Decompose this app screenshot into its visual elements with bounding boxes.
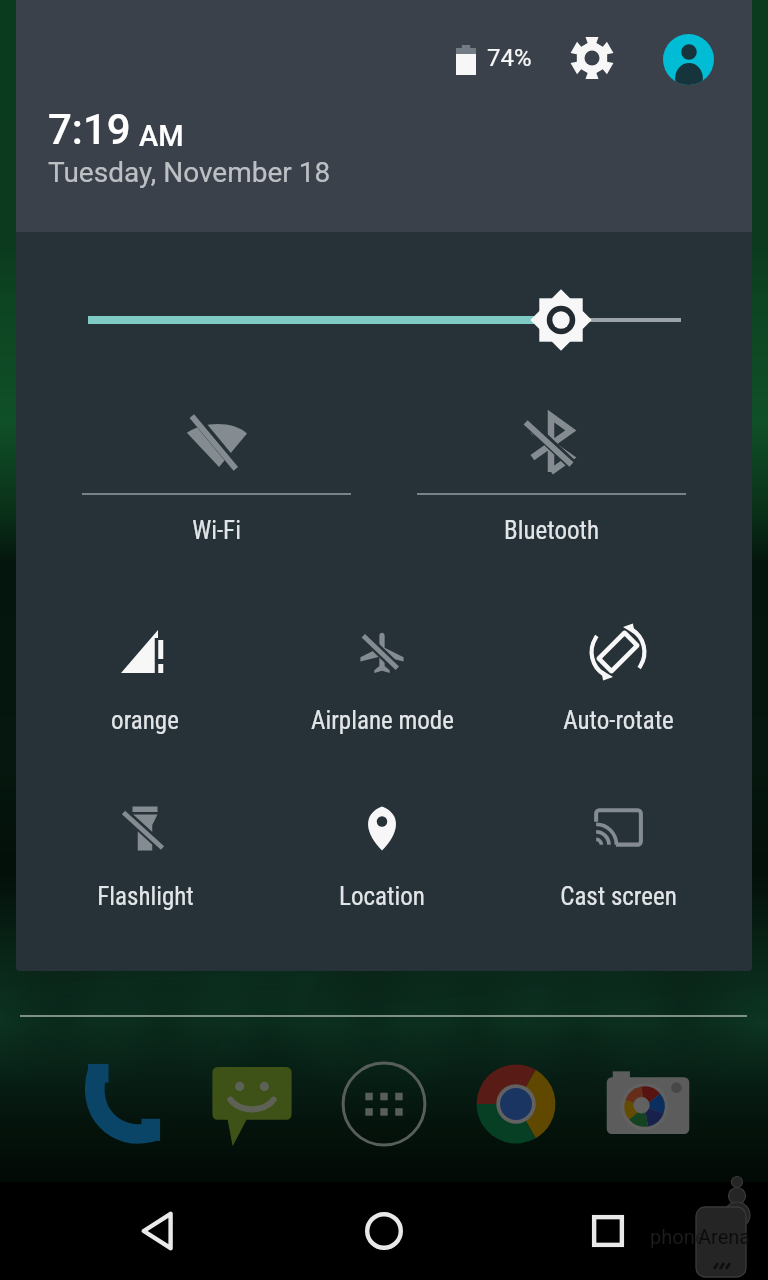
button[interactable]: Recent apps xyxy=(558,1182,658,1280)
button[interactable]: Airplane mode xyxy=(272,623,492,748)
button[interactable]: Wi-Fi xyxy=(66,400,366,560)
staticText: Tuesday, November 18 xyxy=(48,156,331,189)
staticText: AM xyxy=(139,119,184,153)
staticText: Wi-Fi xyxy=(192,516,241,545)
button[interactable]: Auto-rotate xyxy=(508,623,728,748)
button[interactable]: Flashlight xyxy=(35,799,255,924)
button[interactable]: Bluetooth xyxy=(401,400,701,560)
staticText: Location xyxy=(339,882,425,911)
button[interactable]: Home xyxy=(334,1182,434,1280)
button[interactable]: Settings xyxy=(564,30,620,86)
staticText: Bluetooth xyxy=(504,516,599,545)
button[interactable]: Cast screen xyxy=(508,799,728,924)
button[interactable]: Location xyxy=(272,799,492,924)
button[interactable]: Brightness xyxy=(70,290,700,350)
button[interactable]: User profile xyxy=(663,34,714,85)
button[interactable]: orange xyxy=(35,623,255,748)
button[interactable]: Phone xyxy=(68,1052,172,1156)
button[interactable]: All apps xyxy=(332,1052,436,1156)
button[interactable]: Camera xyxy=(596,1052,700,1156)
staticText: Arena xyxy=(698,1225,751,1248)
button[interactable]: Chrome xyxy=(464,1052,568,1156)
staticText: Airplane mode xyxy=(311,706,454,735)
staticText: 7:19 xyxy=(48,105,131,154)
staticText: 74% xyxy=(487,44,532,72)
staticText: Flashlight xyxy=(97,882,194,911)
staticText: Auto-rotate xyxy=(563,706,674,735)
staticText: Cast screen xyxy=(560,882,677,911)
staticText: orange xyxy=(111,706,179,735)
staticText: phone xyxy=(650,1225,706,1248)
button[interactable]: Messaging xyxy=(200,1052,304,1156)
button[interactable]: Back xyxy=(108,1182,208,1280)
